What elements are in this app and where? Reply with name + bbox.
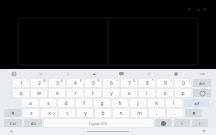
staticText: u (127, 90, 131, 97)
button[interactable]: 0 (175, 79, 191, 87)
staticText: r (74, 90, 77, 97)
button[interactable]: q (13, 89, 29, 97)
button[interactable]: tool4 (108, 69, 135, 78)
button[interactable]: Space (44, 119, 153, 127)
button[interactable]: . (167, 109, 183, 117)
staticText: 5 (92, 80, 95, 87)
button[interactable]: Shift (185, 109, 202, 117)
button[interactable]: 1 (13, 79, 29, 87)
button[interactable]: z (23, 109, 39, 117)
button[interactable]: a (22, 99, 38, 107)
staticText: z (30, 110, 33, 117)
button[interactable]: v (77, 109, 93, 117)
staticText: 2 (38, 80, 41, 87)
button[interactable]: Enter (184, 99, 209, 107)
button[interactable]: l (166, 99, 182, 107)
staticText: a (29, 100, 32, 107)
button[interactable]: , (149, 109, 165, 117)
button[interactable]: g (94, 99, 110, 107)
button[interactable]: tool2 (54, 69, 81, 78)
button[interactable]: x (41, 109, 57, 117)
staticText: & (133, 79, 136, 83)
button[interactable]: Hide keyboard (200, 128, 208, 135)
staticText: m (137, 110, 142, 117)
other: Battery (203, 7, 207, 12)
staticText: del (199, 81, 205, 86)
button[interactable]: 6 (103, 79, 119, 87)
button[interactable]: f (76, 99, 92, 107)
button[interactable]: d (58, 99, 74, 107)
staticText: ( (171, 79, 172, 83)
button[interactable]: Move cursor right (192, 119, 208, 127)
staticText: Ctrl (10, 121, 17, 126)
button[interactable]: tool5 (135, 69, 162, 78)
staticText: ) (189, 79, 190, 83)
staticText: 3 (56, 80, 59, 87)
staticText: ! (27, 79, 28, 83)
button[interactable]: c (59, 109, 75, 117)
button[interactable]: tool1 (27, 69, 54, 78)
staticText: 8 (146, 80, 149, 87)
staticText: e (56, 90, 59, 97)
staticText: @ (43, 79, 46, 83)
other: Wi-Fi (187, 7, 192, 12)
button[interactable]: Symbols (193, 89, 211, 97)
button[interactable]: h (112, 99, 128, 107)
staticText: . (174, 110, 176, 117)
staticText: n (119, 110, 123, 117)
button[interactable]: 5 (85, 79, 101, 87)
other: Signal (195, 7, 200, 12)
button[interactable]: r (67, 89, 83, 97)
button[interactable]: e (49, 89, 65, 97)
button[interactable]: tool6 (162, 69, 189, 78)
staticText: b (101, 110, 105, 117)
staticText: 9 (164, 80, 167, 87)
button[interactable]: Back (7, 128, 15, 135)
button[interactable]: t (85, 89, 101, 97)
button[interactable]: 2 (31, 79, 47, 87)
button[interactable]: Ctrl (4, 119, 22, 127)
staticText: k (155, 100, 158, 107)
staticText: i (146, 90, 148, 97)
button[interactable]: n (113, 109, 129, 117)
staticText: j (137, 100, 139, 107)
button[interactable]: u (121, 89, 137, 97)
button[interactable]: 7 (121, 79, 137, 87)
staticText: t (92, 90, 94, 97)
staticText: 6 (110, 80, 113, 87)
button[interactable]: o (157, 89, 173, 97)
button[interactable]: 9 (157, 79, 173, 87)
staticText: 0 (182, 80, 185, 87)
button[interactable]: Shift (4, 109, 21, 117)
button[interactable]: w (31, 89, 47, 97)
staticText: 4 (74, 80, 77, 87)
button[interactable]: 3 (49, 79, 65, 87)
button[interactable]: tool0 (0, 69, 27, 78)
staticText: v (84, 110, 87, 117)
button[interactable]: tool7 (189, 69, 216, 78)
button[interactable]: i (139, 89, 155, 97)
staticText: p (181, 90, 185, 97)
staticText: 1 (20, 80, 23, 87)
button[interactable]: Backspace (193, 79, 211, 87)
button[interactable]: 4 (67, 79, 83, 87)
button[interactable]: Alt (24, 119, 42, 127)
button[interactable]: s (40, 99, 56, 107)
button[interactable]: m (131, 109, 147, 117)
staticText: f (83, 100, 85, 107)
button[interactable]: 8 (139, 79, 155, 87)
staticText: English (US) (89, 121, 108, 125)
button[interactable]: j (130, 99, 146, 107)
staticText: x (48, 110, 51, 117)
button[interactable]: p (175, 89, 191, 97)
button[interactable]: Move cursor left (174, 119, 190, 127)
button[interactable]: tool3 (81, 69, 108, 78)
staticText: , (156, 110, 158, 117)
staticText: ‹ (181, 120, 183, 127)
button[interactable]: k (148, 99, 164, 107)
button[interactable]: y (103, 89, 119, 97)
staticText: w (37, 90, 41, 97)
button[interactable]: Emoji (155, 119, 172, 127)
staticText: l (173, 100, 175, 107)
button[interactable]: b (95, 109, 111, 117)
